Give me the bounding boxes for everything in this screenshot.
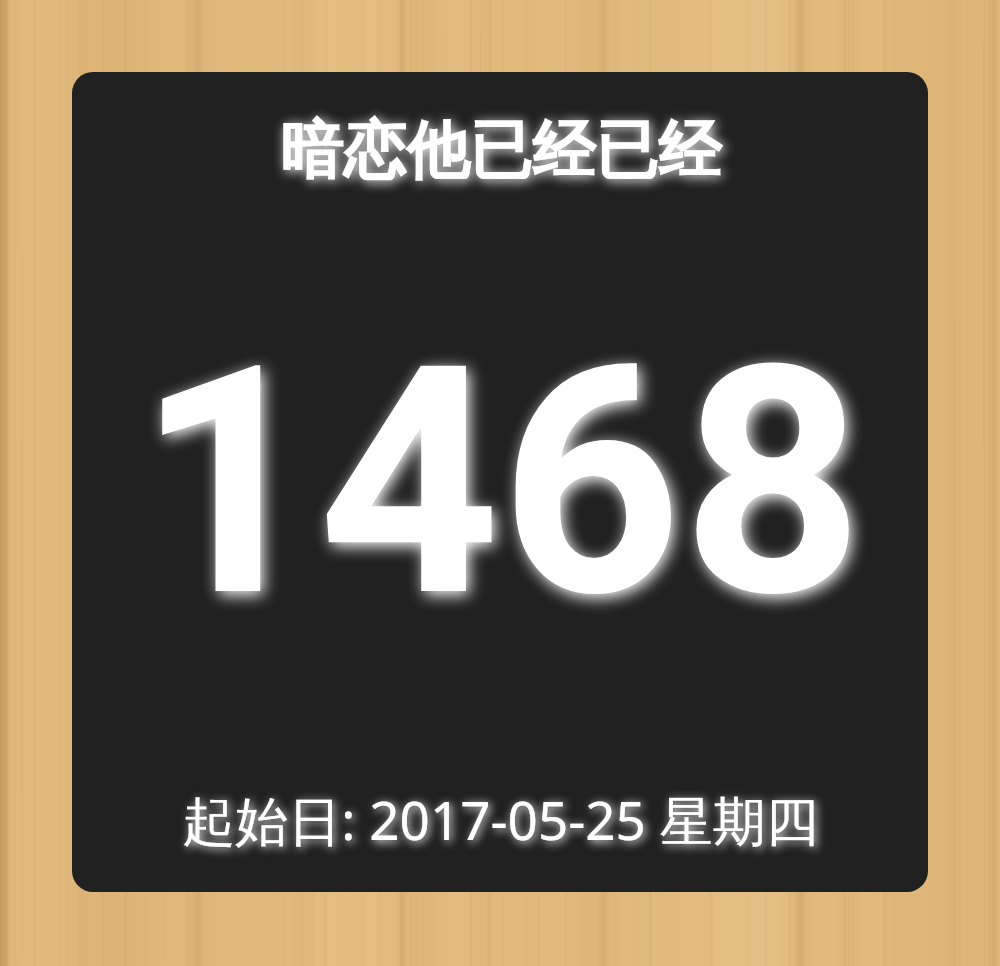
staticText: 1468 — [136, 297, 864, 668]
staticText: 起始日: 2017-05-25 星期四 — [182, 783, 819, 855]
button[interactable]: 暗恋他已经已经 1468 天 — [72, 72, 928, 892]
staticText: 暗恋他已经已经 — [280, 111, 721, 190]
